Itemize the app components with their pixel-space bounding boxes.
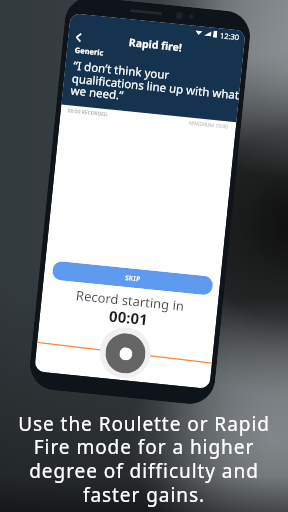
button[interactable]: Record [104, 331, 147, 375]
staticText: Rapid fire! [128, 35, 183, 54]
staticText: 00:00 RECORDED [67, 107, 109, 118]
staticText: Generic [74, 45, 104, 58]
staticText: SKIP [125, 273, 141, 283]
staticText: Record starting in [75, 286, 185, 315]
staticText: 00:01 [108, 305, 149, 329]
staticText: MAXIMUM 15:00 [189, 120, 229, 131]
button[interactable]: Back [68, 27, 88, 47]
button[interactable]: SKIP [52, 261, 214, 296]
staticText: “I don’t think your qualifications line … [70, 58, 241, 114]
staticText: 12:30 [220, 30, 240, 42]
staticText: Use the Roulette or Rapid Fire mode for … [0, 411, 288, 508]
